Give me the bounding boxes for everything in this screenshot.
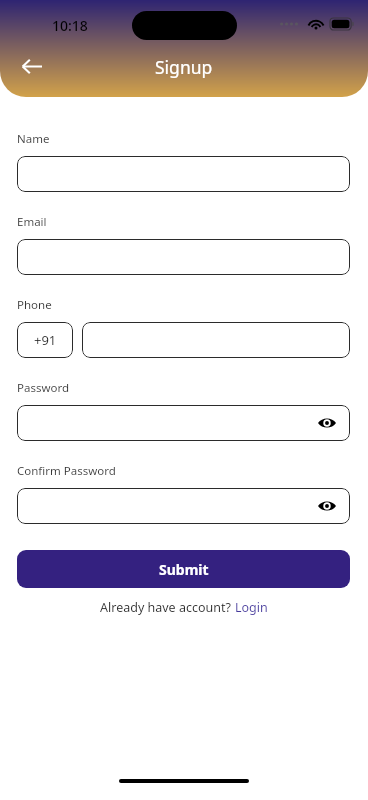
button[interactable] [82,322,350,358]
staticText: Password [17,380,70,396]
button[interactable] [17,239,350,275]
button[interactable]: Back [14,49,48,83]
button[interactable]: Submit [17,550,350,588]
staticText: 10:18 [52,16,88,35]
button[interactable]: Login [235,599,268,616]
staticText: Login [235,599,268,616]
button[interactable]: +91 [17,322,73,358]
button[interactable] [17,156,350,192]
staticText: Name [17,131,50,147]
staticText: Phone [17,297,52,313]
staticText: Confirm Password [17,463,116,479]
staticText: Signup [155,55,213,79]
button[interactable]: Show password [316,412,338,434]
button[interactable]: Show password [17,405,350,441]
button[interactable]: Show password [17,488,350,524]
staticText: Submit [159,560,209,579]
staticText: Already have account? [100,599,235,616]
staticText: Email [17,214,47,230]
staticText: +91 [34,331,57,349]
button[interactable]: Show password [316,495,338,517]
